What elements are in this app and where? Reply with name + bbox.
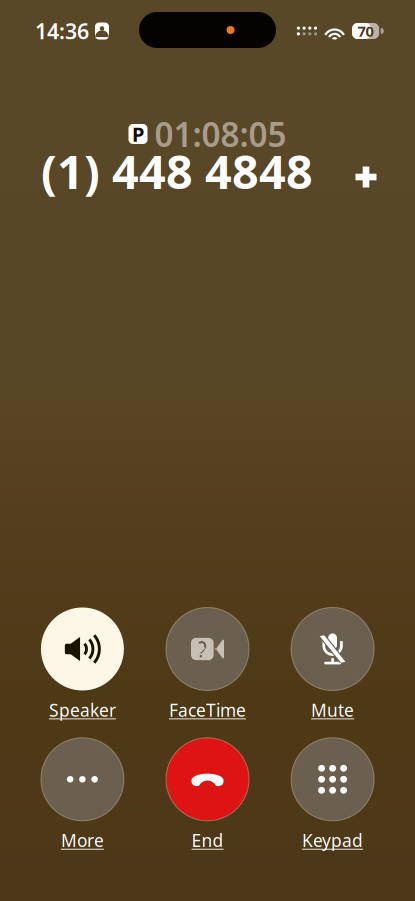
button[interactable]: End: [147, 738, 267, 852]
button[interactable]: Keypad: [273, 738, 393, 852]
staticText: 14:36: [35, 17, 89, 45]
staticText: More: [61, 829, 104, 852]
button[interactable]: FaceTime: [147, 607, 267, 721]
staticText: FaceTime: [169, 698, 246, 721]
staticText: Speaker: [49, 698, 116, 721]
staticText: Mute: [311, 698, 354, 721]
button[interactable]: Add call: [342, 153, 390, 201]
staticText: 01:08:05: [154, 112, 286, 156]
staticText: (1) 448 4848: [41, 140, 313, 202]
staticText: P: [132, 121, 144, 147]
staticText: End: [191, 829, 223, 852]
staticText: Keypad: [302, 829, 363, 852]
button[interactable]: Mute: [273, 607, 393, 721]
button[interactable]: Speaker: [22, 607, 142, 721]
staticText: 70: [358, 21, 374, 41]
button[interactable]: More: [22, 738, 142, 852]
